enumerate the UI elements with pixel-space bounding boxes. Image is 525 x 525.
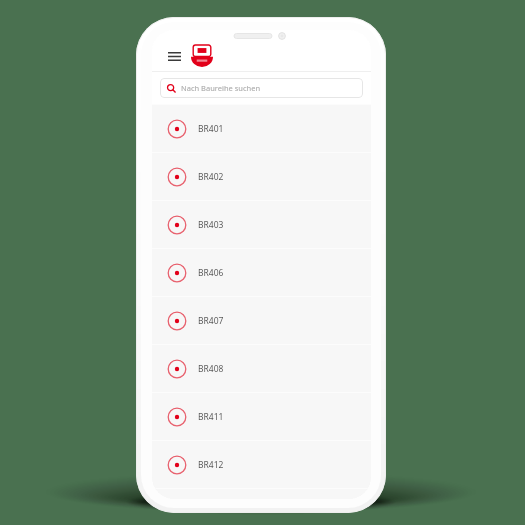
button[interactable]: Nach Baureihe suchen bbox=[160, 78, 363, 98]
staticText: BR408 bbox=[198, 363, 224, 375]
staticText: BR401 bbox=[198, 123, 224, 135]
button[interactable]: BR407 bbox=[152, 297, 371, 344]
button[interactable]: App logo bbox=[191, 45, 213, 67]
staticText: BR406 bbox=[198, 267, 224, 279]
button[interactable]: BR402 bbox=[152, 153, 371, 200]
button[interactable]: BR401 bbox=[152, 105, 371, 152]
button[interactable]: BR406 bbox=[152, 249, 371, 296]
staticText: BR407 bbox=[198, 315, 224, 327]
staticText: BR403 bbox=[198, 219, 224, 231]
button[interactable]: BR408 bbox=[152, 345, 371, 392]
button[interactable]: BR412 bbox=[152, 441, 371, 488]
button[interactable]: BR403 bbox=[152, 201, 371, 248]
staticText: Nach Baureihe suchen bbox=[181, 83, 261, 93]
staticText: BR402 bbox=[198, 171, 224, 183]
button[interactable]: BR411 bbox=[152, 393, 371, 440]
button[interactable]: Menu bbox=[164, 46, 184, 66]
staticText: BR412 bbox=[198, 459, 224, 471]
staticText: BR411 bbox=[198, 411, 224, 423]
